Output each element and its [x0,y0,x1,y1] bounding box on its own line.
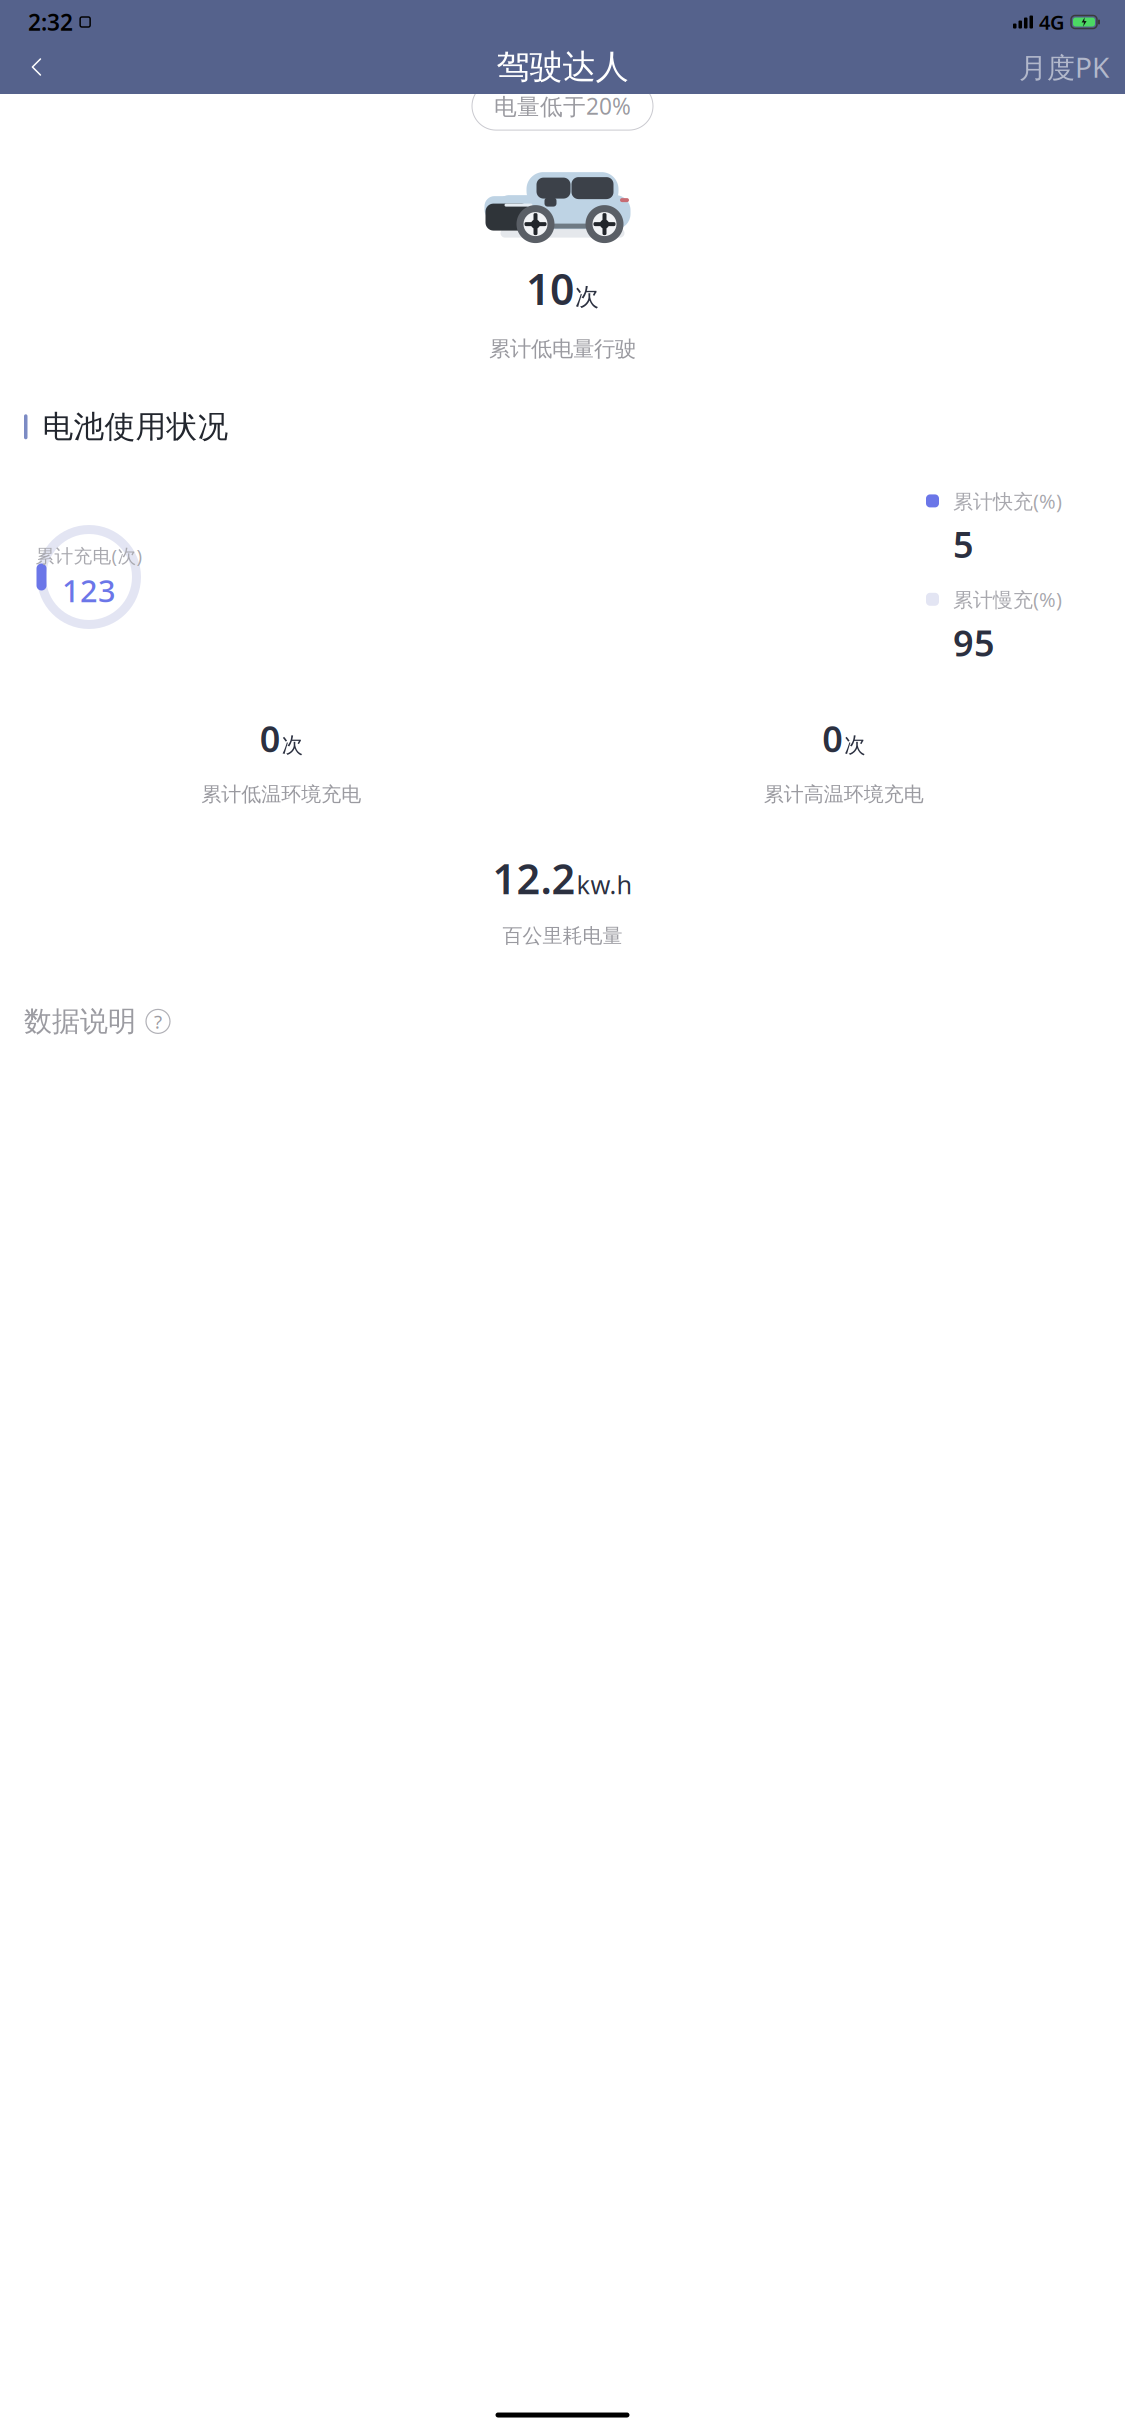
staticText: 月度PK [1019,48,1109,86]
staticText: 2:32 [28,7,73,37]
staticText: 5 [953,520,974,568]
staticText: 电池使用状况 [42,408,228,446]
staticText: 累计充电(次) [35,543,142,568]
button[interactable]: 数据说明 [24,998,170,1045]
staticText: 数据说明 [24,1004,136,1039]
staticText: 12.2 [492,851,575,906]
staticText: 驾驶达人 [496,46,628,87]
button[interactable]: 月度PK [1013,42,1115,92]
staticText: 百公里耗电量 [502,924,622,948]
staticText: 累计低电量行驶 [489,336,636,362]
button[interactable]: 返回 [10,42,64,92]
staticText: 次 [575,282,599,312]
staticText: 次 [282,732,303,758]
staticText: 4G [1039,9,1065,35]
staticText: 电量低于20% [494,91,631,121]
staticText: ? [154,1009,162,1034]
staticText: 10 [526,260,574,317]
staticText: 次 [844,732,865,758]
staticText: kw.h [576,868,632,901]
staticText: 累计慢充(%) [953,586,1062,613]
staticText: 95 [953,619,995,666]
staticText: 累计低温环境充电 [201,782,361,807]
staticText: 0 [822,714,843,762]
staticText: 123 [62,570,116,611]
staticText: 0 [260,714,281,762]
staticText: 累计高温环境充电 [764,782,924,807]
staticText: 累计快充(%) [953,488,1062,514]
